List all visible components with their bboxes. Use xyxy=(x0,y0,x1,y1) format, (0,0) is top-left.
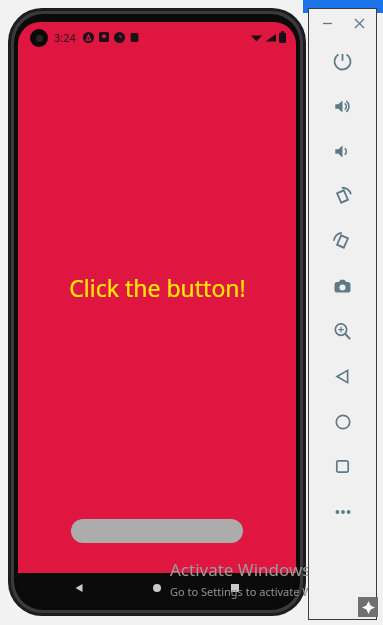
staticText: Click the button! xyxy=(69,272,246,303)
button[interactable]: Rotate left xyxy=(309,174,376,219)
button[interactable]: Minimize xyxy=(317,13,337,33)
button[interactable]: Home xyxy=(144,575,170,601)
button[interactable]: Recent apps xyxy=(222,575,248,601)
staticText: Activate Windows xyxy=(170,558,311,581)
button[interactable]: Back xyxy=(66,575,92,601)
button[interactable] xyxy=(71,519,243,543)
button[interactable]: More xyxy=(309,489,376,534)
button[interactable]: Take screenshot xyxy=(309,264,376,309)
button[interactable]: Home xyxy=(309,399,376,444)
button[interactable]: Zoom xyxy=(309,309,376,354)
staticText: Go to Settings to activate Windows. xyxy=(170,584,353,599)
button[interactable]: Volume up xyxy=(309,84,376,129)
button[interactable]: Rotate right xyxy=(309,219,376,264)
button[interactable]: Power xyxy=(309,39,376,84)
button[interactable]: Overview xyxy=(309,444,376,489)
button[interactable]: Close xyxy=(349,13,369,33)
button[interactable]: Volume down xyxy=(309,129,376,174)
button[interactable]: Copilot xyxy=(358,597,378,617)
button[interactable]: Back xyxy=(309,354,376,399)
staticText: 3:24 xyxy=(54,30,76,45)
